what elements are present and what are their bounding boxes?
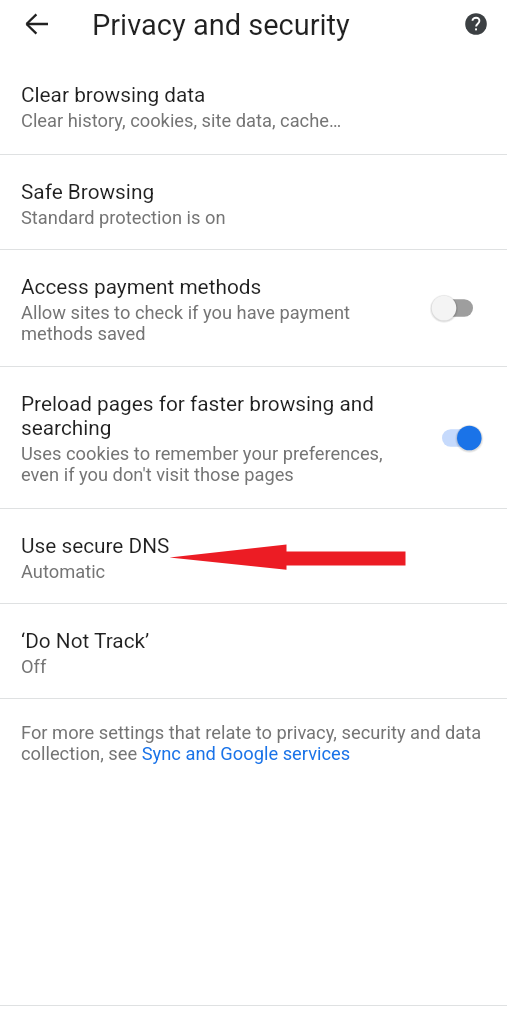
staticText: Safe Browsing (21, 180, 155, 204)
button[interactable]: Help (460, 8, 492, 40)
staticText: Preload pages for faster browsing and se… (21, 392, 374, 440)
staticText: Off (21, 656, 47, 677)
button[interactable]: Toggle on (412, 416, 474, 460)
staticText: Allow sites to check if you have payment… (21, 302, 351, 344)
staticText: Clear history, cookies, site data, cache… (21, 110, 342, 131)
button[interactable]: Use secure DNS (0, 509, 507, 603)
button[interactable]: Toggle off (412, 286, 474, 330)
staticText: Access payment methods (21, 275, 262, 299)
staticText: Automatic (21, 561, 106, 582)
staticText: Clear browsing data (21, 83, 206, 107)
button[interactable]: For more settings that relate to privacy… (21, 722, 490, 764)
button[interactable]: ‘Do Not Track’ (0, 604, 507, 698)
staticText: Standard protection is on (21, 207, 226, 228)
staticText: Privacy and security (92, 8, 350, 42)
button[interactable]: Safe Browsing (0, 155, 507, 249)
button[interactable]: Access payment methods (0, 250, 507, 366)
button[interactable]: Clear browsing data (0, 58, 507, 154)
staticText: For more settings that relate to privacy… (21, 722, 490, 764)
button[interactable]: Back (19, 5, 57, 43)
staticText: Uses cookies to remember your preference… (21, 443, 383, 485)
button[interactable]: Preload pages for faster browsing and se… (0, 367, 507, 508)
staticText: ‘Do Not Track’ (21, 629, 150, 653)
staticText: Use secure DNS (21, 534, 170, 558)
